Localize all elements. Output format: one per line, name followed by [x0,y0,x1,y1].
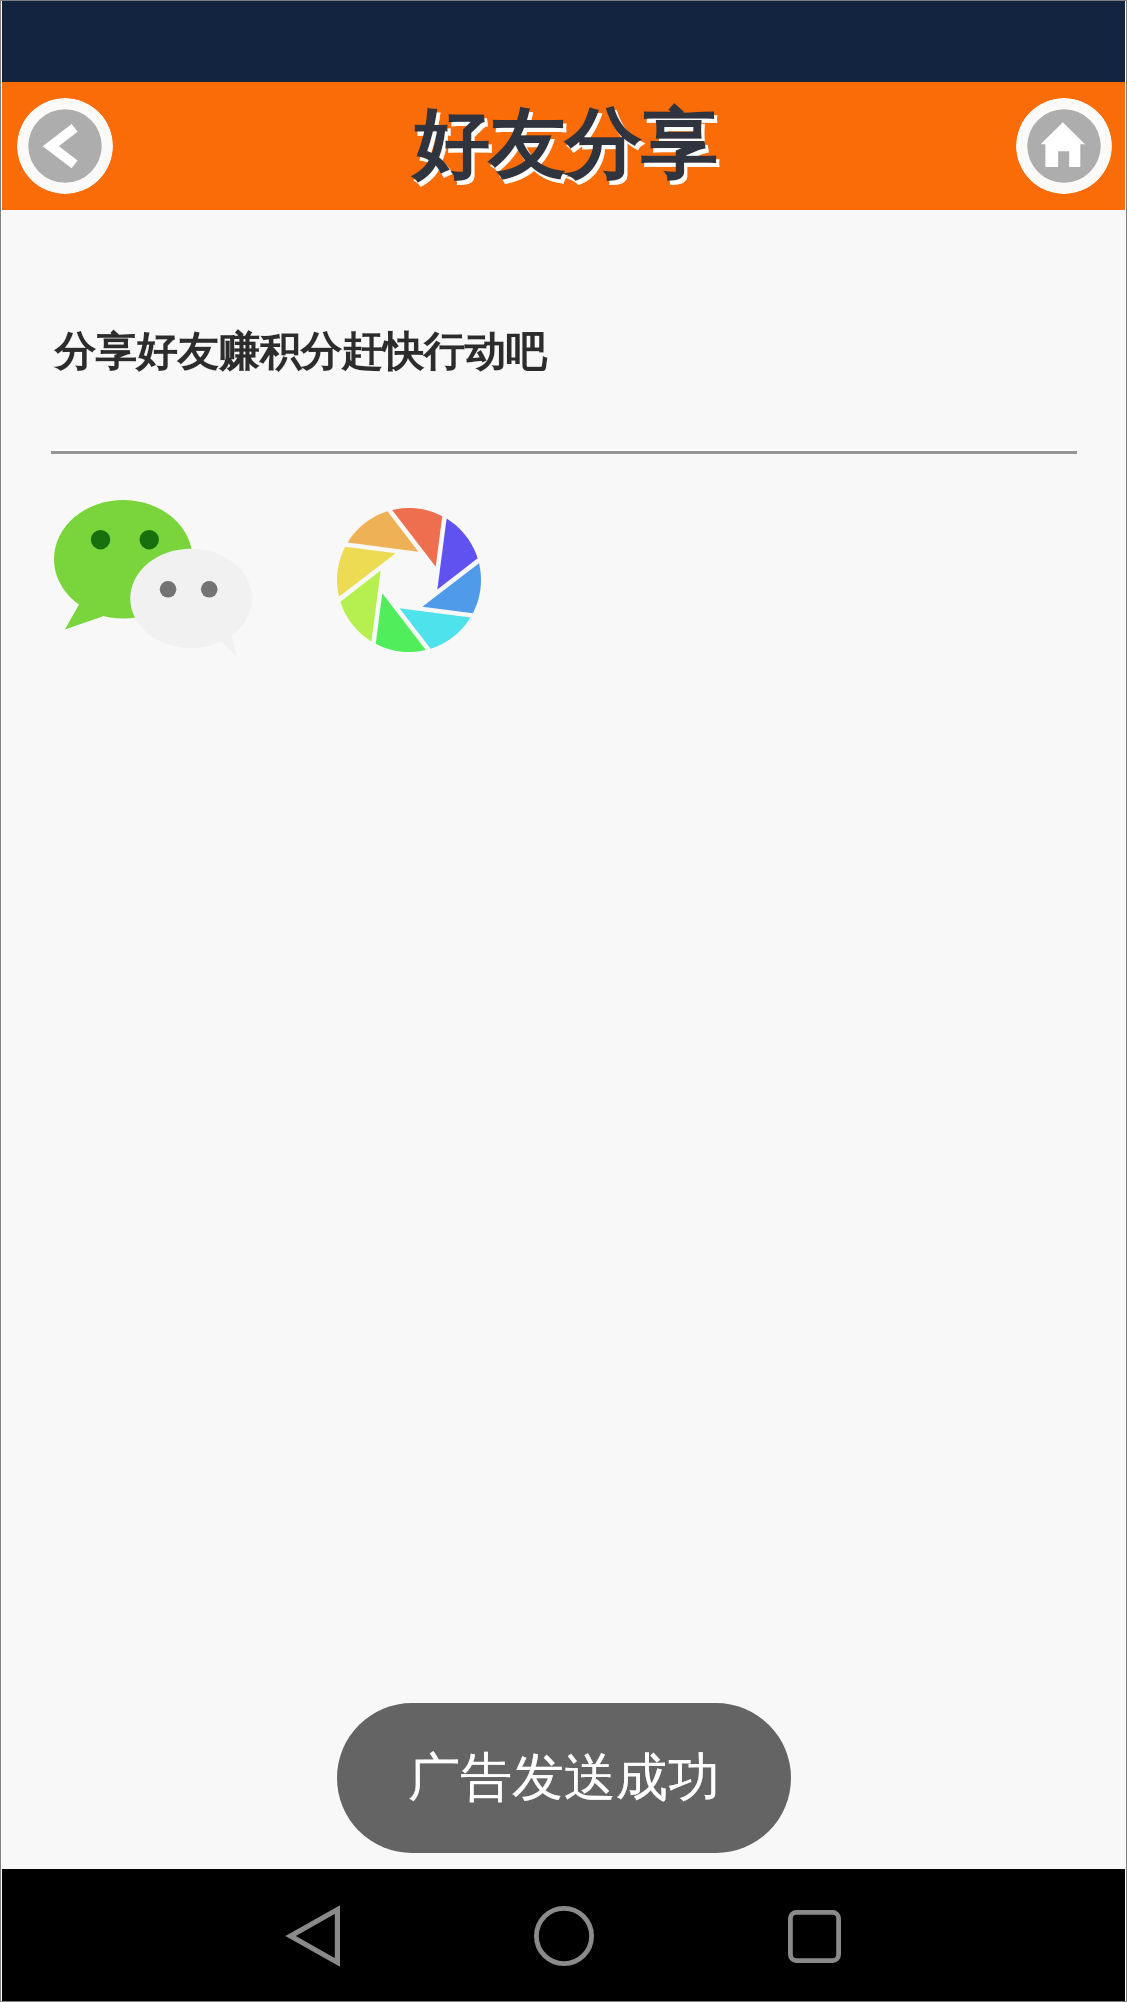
button[interactable]: Share to WeChat [54,500,252,660]
button[interactable]: Home [1016,98,1112,194]
staticText: 分享好友赚积分赶快行动吧 [54,327,546,379]
button[interactable]: Back [17,98,113,194]
button[interactable]: 广告发送成功 [337,1703,791,1853]
button[interactable]: Home [504,1876,624,1996]
staticText: 好友分享 [412,98,716,194]
button[interactable]: Recents [754,1876,874,1996]
button[interactable]: Share to Moments [337,500,481,660]
button[interactable]: Back [254,1876,374,1996]
staticText: 好友分享 [415,102,719,198]
staticText: 广告发送成功 [408,1745,720,1811]
